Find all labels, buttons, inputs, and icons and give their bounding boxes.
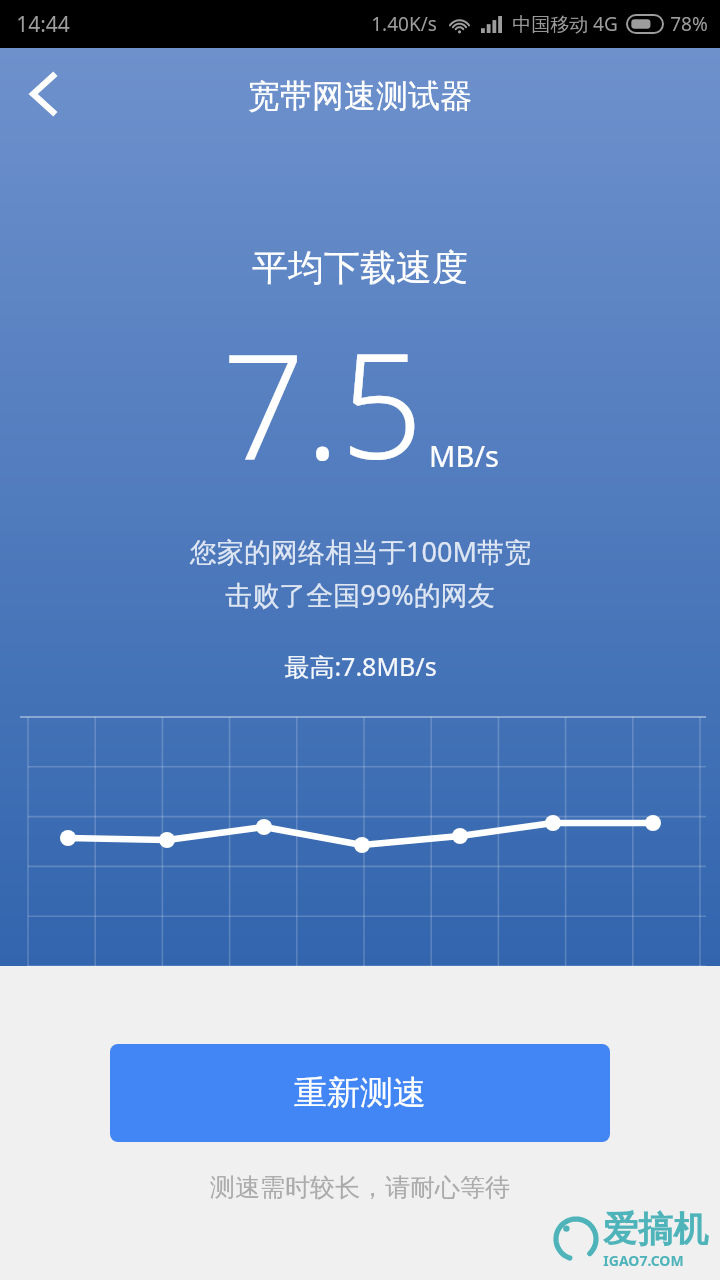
- staticText: 1.40K/s: [371, 11, 437, 37]
- staticText: 7.5: [222, 304, 423, 501]
- staticText: 重新测速: [294, 1072, 426, 1114]
- staticText: 最高:7.8MB/s: [284, 649, 437, 683]
- staticText: 宽带网速测试器: [248, 76, 472, 116]
- staticText: 您家的网络相当于100M带宽: [190, 533, 531, 570]
- staticText: 击败了全国99%的网友: [225, 576, 495, 613]
- staticText: 测速需时较长，请耐心等待: [210, 1172, 510, 1203]
- staticText: 78%: [670, 11, 708, 37]
- staticText: 中国移动 4G: [512, 11, 618, 37]
- staticText: 平均下载速度: [252, 245, 468, 290]
- staticText: 爱搞机: [603, 1207, 708, 1251]
- staticText: IGAO7.COM: [603, 1251, 684, 1270]
- staticText: MB/s: [429, 436, 499, 475]
- button[interactable]: Back: [6, 56, 82, 132]
- button[interactable]: 重新测速: [110, 1044, 610, 1142]
- staticText: 14:44: [16, 10, 70, 39]
